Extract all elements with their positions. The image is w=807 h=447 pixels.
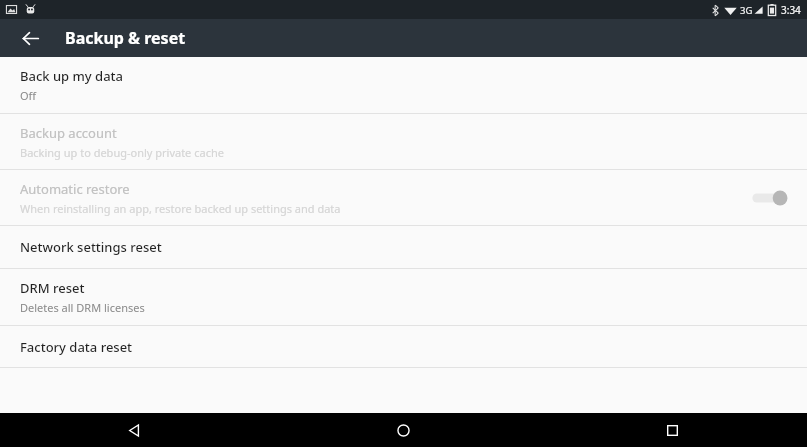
button[interactable]: Factory data reset (0, 326, 807, 367)
button[interactable]: DRM reset (0, 269, 807, 325)
staticText: Network settings reset (20, 238, 162, 256)
button[interactable]: Network settings reset (0, 226, 807, 268)
button[interactable]: Back up my data (0, 57, 807, 113)
button[interactable]: Automatic restore (749, 186, 791, 210)
button[interactable]: Automatic restore (0, 170, 807, 225)
staticText: Backing up to debug-only private cache (20, 145, 224, 160)
button[interactable]: Back (0, 413, 269, 447)
staticText: DRM reset (20, 279, 85, 297)
staticText: Back up my data (20, 67, 124, 85)
button[interactable]: Backup account (0, 114, 807, 169)
button[interactable]: Back (15, 23, 45, 53)
button[interactable]: Home (269, 413, 538, 447)
staticText: Backup & reset (65, 27, 186, 49)
staticText: 3G (740, 4, 753, 17)
staticText: Automatic restore (20, 180, 130, 198)
button[interactable]: Recent apps (538, 413, 807, 447)
staticText: 3:34 (781, 3, 801, 17)
staticText: Backup account (20, 124, 117, 142)
staticText: Deletes all DRM licenses (20, 300, 145, 315)
staticText: When reinstalling an app, restore backed… (20, 201, 341, 216)
staticText: Off (20, 88, 37, 103)
staticText: Factory data reset (20, 338, 133, 356)
